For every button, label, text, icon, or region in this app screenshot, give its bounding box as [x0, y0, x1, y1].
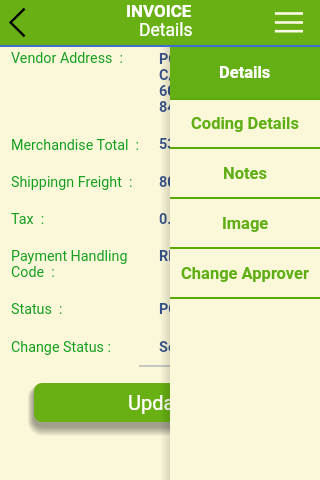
staticText: C/O ACCOUNTS — [159, 67, 264, 84]
staticText: Shippingn Freight : — [11, 174, 133, 191]
staticText: REG — [159, 248, 187, 265]
staticText: Details — [139, 20, 193, 41]
staticText: 80.00 — [159, 174, 197, 191]
staticText: INVOICE — [126, 1, 192, 21]
staticText: Select — [159, 339, 200, 356]
staticText: Vendor Address : — [11, 50, 123, 67]
button[interactable]: Change Approver — [170, 249, 320, 297]
button[interactable]: Coding Details — [170, 100, 320, 147]
staticText: Merchandise Total : — [11, 137, 140, 154]
staticText: PO BOX 1234 — [159, 51, 248, 68]
staticText: 53.00 — [159, 136, 197, 153]
staticText: Change Approver — [181, 264, 310, 283]
button[interactable]: Notes — [170, 149, 320, 197]
staticText: Payment Handling — [11, 248, 128, 265]
staticText: 0.00 — [159, 211, 189, 228]
button[interactable]: Update — [34, 383, 286, 422]
button[interactable]: Back — [0, 0, 44, 44]
staticText: Notes — [223, 164, 267, 183]
staticText: Image — [222, 214, 269, 233]
staticText: Change Status : — [11, 339, 111, 356]
button[interactable]: Details — [170, 47, 320, 98]
staticText: Tax : — [11, 211, 45, 228]
staticText: 84101-1234 — [159, 99, 240, 116]
button[interactable]: Image — [170, 199, 320, 247]
button[interactable]: Menu — [272, 0, 320, 45]
staticText: Details — [219, 63, 271, 82]
staticText: Coding Details — [191, 114, 299, 133]
staticText: Status : — [11, 301, 63, 318]
staticText: Code : — [11, 264, 55, 281]
staticText: 60000 MAIN ST — [159, 83, 263, 100]
staticText: Update — [128, 391, 192, 414]
staticText: POSTED — [159, 301, 214, 318]
